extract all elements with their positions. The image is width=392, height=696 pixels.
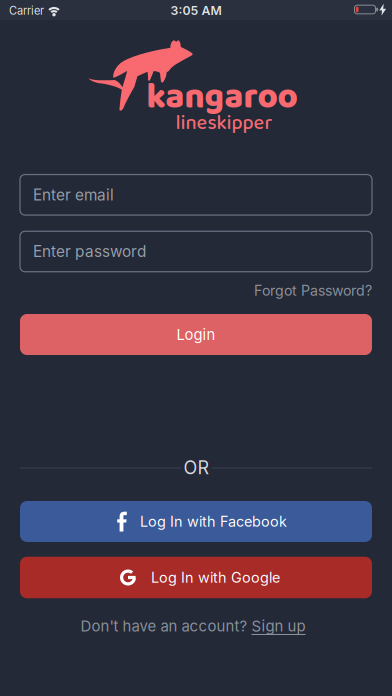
staticText: 3:05 AM (170, 3, 221, 18)
staticText: Forgot Password? (254, 282, 372, 299)
staticText: Enter password (33, 242, 146, 261)
button[interactable]: Login (20, 314, 372, 355)
button[interactable]: Sign up (251, 617, 305, 635)
button[interactable]: Log In with Facebook (20, 501, 372, 542)
button[interactable]: Enter email (20, 175, 372, 215)
button[interactable]: Enter password (20, 231, 372, 272)
staticText: OR (183, 457, 209, 479)
staticText: lineskipper (175, 107, 272, 139)
button[interactable]: Forgot Password? (254, 282, 372, 299)
staticText: kangaroo (146, 70, 297, 125)
button[interactable]: Log In with Google (20, 557, 372, 598)
staticText: Log In with Facebook (140, 513, 287, 530)
staticText: Enter email (33, 185, 114, 204)
staticText: Login (176, 325, 215, 343)
staticText: Don't have an account? (80, 617, 247, 635)
staticText: Carrier (9, 4, 44, 17)
staticText: Log In with Google (151, 569, 280, 586)
staticText: Sign up (251, 617, 305, 635)
